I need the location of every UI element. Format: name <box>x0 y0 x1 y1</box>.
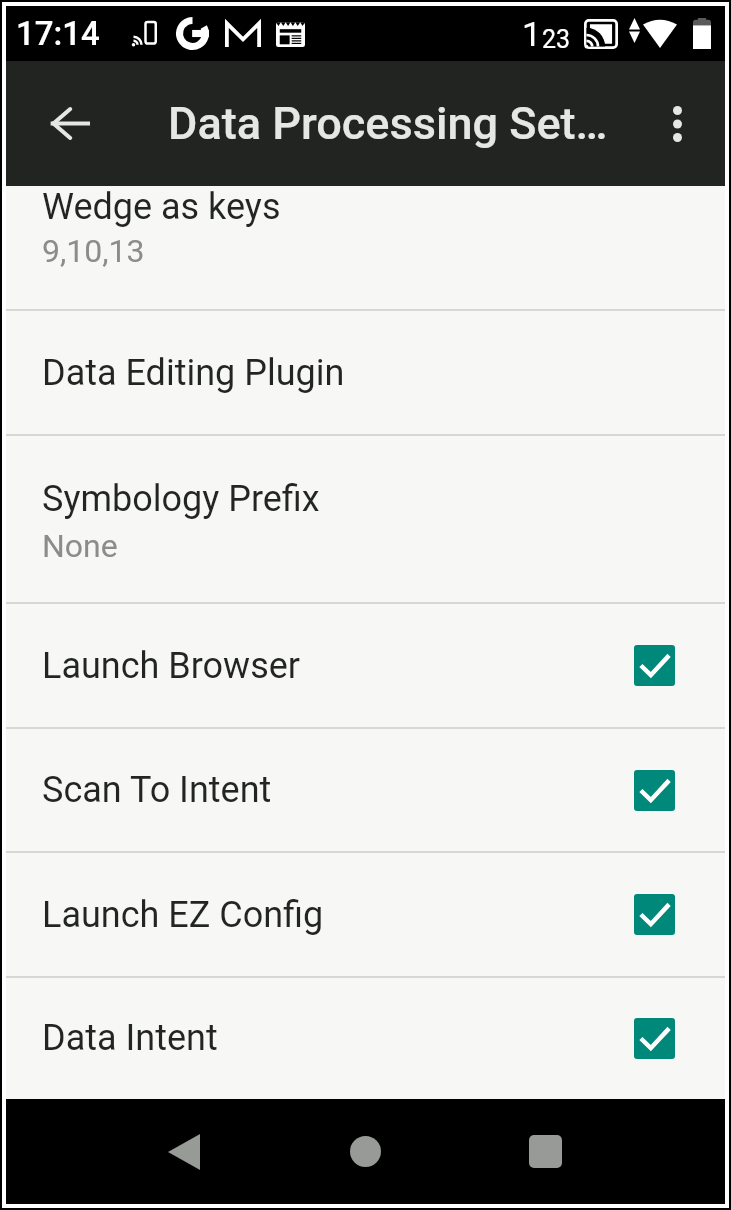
button[interactable]: Data Editing Plugin <box>6 311 725 434</box>
button[interactable]: Recent apps <box>497 1099 593 1204</box>
staticText: Data Intent <box>42 1017 218 1059</box>
button[interactable]: Back <box>136 1099 232 1204</box>
button[interactable]: Home <box>317 1099 413 1204</box>
staticText: Data Processing Set… <box>168 97 608 150</box>
staticText: Wedge as keys <box>42 186 281 228</box>
staticText: Symbology Prefix <box>42 478 320 520</box>
staticText: Scan To Intent <box>42 769 272 811</box>
staticText: 9,10,13 <box>42 232 145 270</box>
staticText: 17:14 <box>16 14 100 53</box>
staticText: Launch EZ Config <box>42 894 324 936</box>
staticText: Data Editing Plugin <box>42 352 345 394</box>
button[interactable]: Symbology Prefix <box>6 436 725 602</box>
staticText: None <box>42 527 118 565</box>
button[interactable]: Launch EZ Config <box>6 853 725 976</box>
button[interactable]: More options <box>623 61 725 186</box>
staticText: Launch Browser <box>42 645 301 687</box>
button[interactable]: Launch Browser <box>6 604 725 727</box>
button[interactable]: Data Intent <box>6 978 725 1098</box>
button[interactable]: Wedge as keys <box>6 186 725 309</box>
button[interactable]: Navigate up <box>6 61 116 186</box>
button[interactable]: Scan To Intent <box>6 729 725 851</box>
staticText: 1 <box>522 14 542 54</box>
staticText: 23 <box>542 25 571 54</box>
